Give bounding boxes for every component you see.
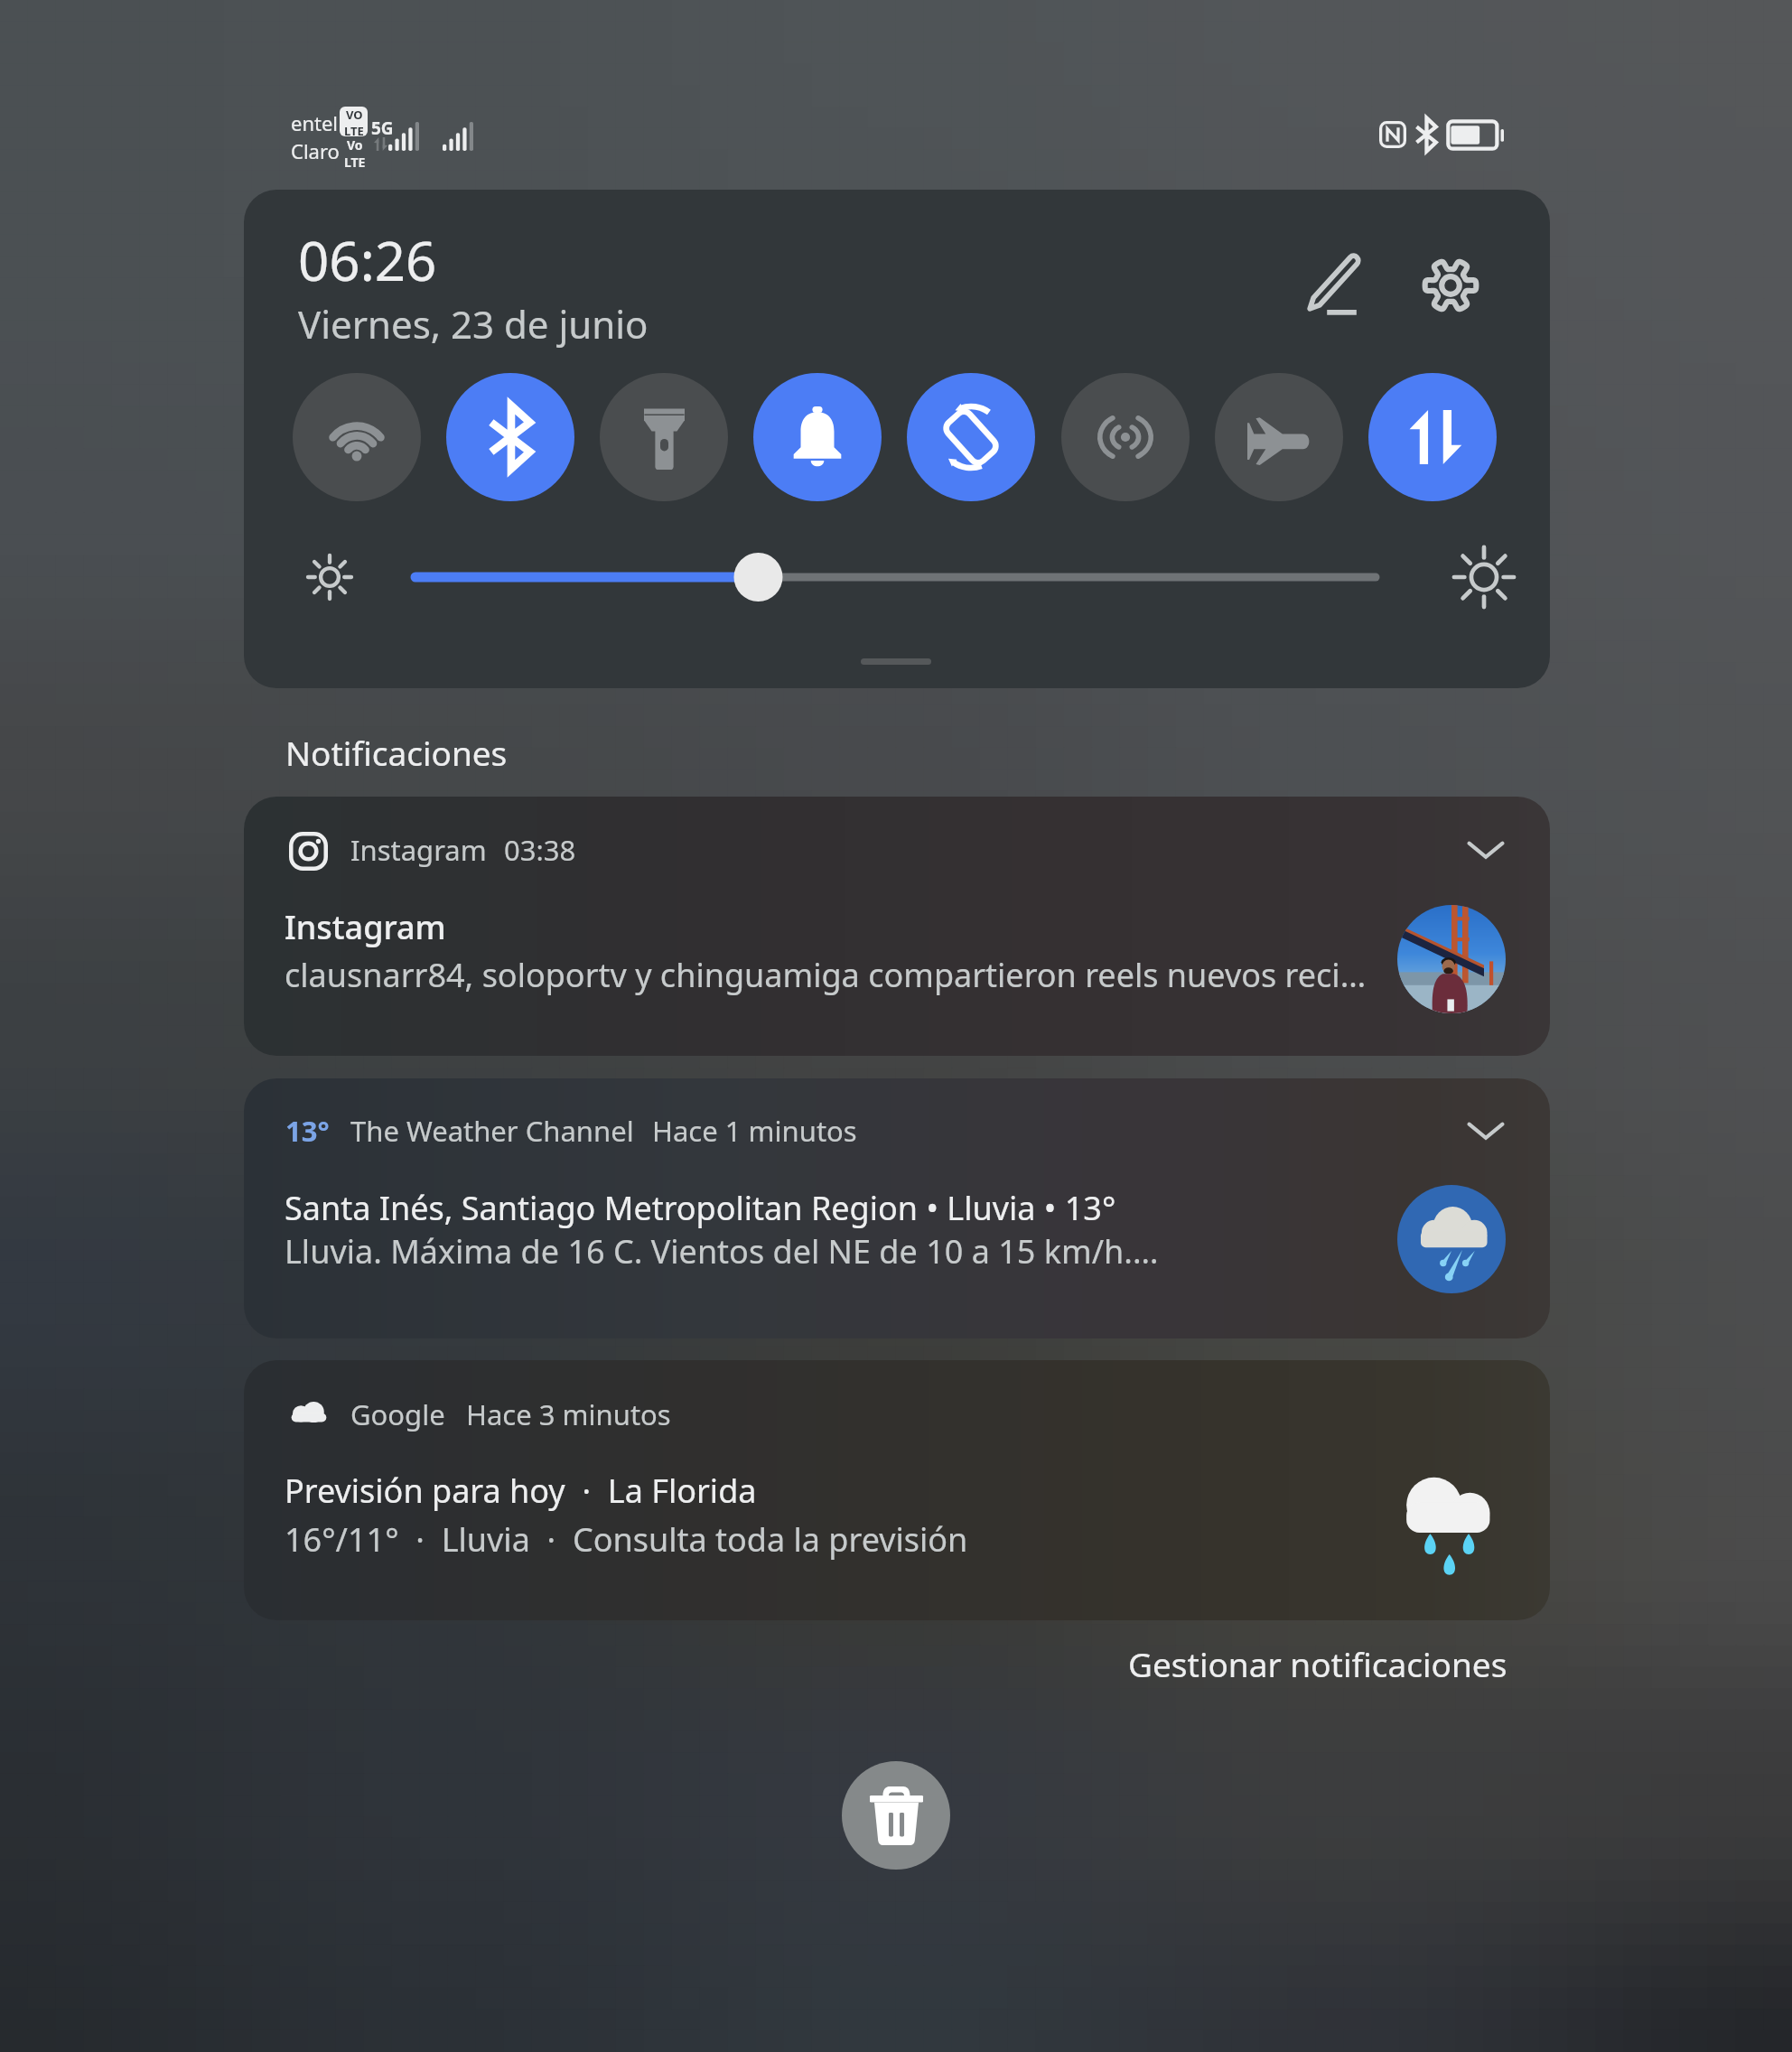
staticText: LTE (344, 123, 364, 136)
staticText: LTE (344, 154, 366, 171)
staticText: Santa Inés, Santiago Metropolitan Region… (285, 1186, 1377, 1230)
button[interactable]: 13° (244, 1078, 1550, 1338)
staticText: Gestionar notificaciones (1128, 1641, 1507, 1686)
staticText: clausnarr84, soloportv y chinguamiga com… (285, 953, 1377, 997)
button[interactable]: Bluetooth (446, 373, 574, 501)
button[interactable]: Zona Wi-Fi (1061, 373, 1190, 501)
button[interactable]: Ajustes (1409, 244, 1492, 327)
staticText: Google (350, 1395, 445, 1433)
staticText: Claro (291, 137, 340, 164)
button[interactable]: Rotación (907, 373, 1035, 501)
staticText: 03:38 (504, 831, 576, 869)
staticText: Lluvia. Máxima de 16 C. Vientos del NE d… (285, 1229, 1377, 1273)
staticText: The Weather Channel (350, 1112, 634, 1150)
button[interactable]: Datos móviles (1368, 373, 1497, 501)
button[interactable]: Wi-Fi (293, 373, 421, 501)
staticText: 5G (371, 117, 394, 140)
staticText: Hace 1 minutos (652, 1112, 857, 1150)
staticText: Instagram (285, 905, 446, 949)
staticText: 06:26 (298, 223, 437, 297)
button[interactable]: Sonido (753, 373, 882, 501)
staticText: Hace 3 minutos (466, 1395, 671, 1433)
button[interactable]: Modo avión (1215, 373, 1343, 501)
button[interactable]: Linterna (600, 373, 728, 501)
button[interactable]: Instagram (244, 797, 1550, 1056)
button[interactable]: Editar (1292, 244, 1375, 327)
button[interactable]: Gestionar notificaciones (1120, 1632, 1516, 1695)
staticText: Previsión para hoy · La Florida (285, 1469, 757, 1513)
staticText: Vo (347, 136, 363, 154)
button[interactable]: Borrar todas las notificaciones (842, 1761, 950, 1870)
button[interactable]: Expandir (1445, 809, 1526, 891)
staticText: Notificaciones (285, 730, 508, 775)
staticText: 13° (285, 1112, 330, 1150)
button[interactable]: Google (244, 1360, 1550, 1620)
staticText: 16°/11° · Lluvia · Consulta toda la prev… (285, 1517, 968, 1562)
staticText: Instagram (350, 831, 487, 869)
staticText: entel (291, 109, 339, 136)
staticText: VO (346, 107, 363, 123)
staticText: Viernes, 23 de junio (298, 298, 649, 350)
button[interactable]: Expandir (1445, 1090, 1526, 1171)
